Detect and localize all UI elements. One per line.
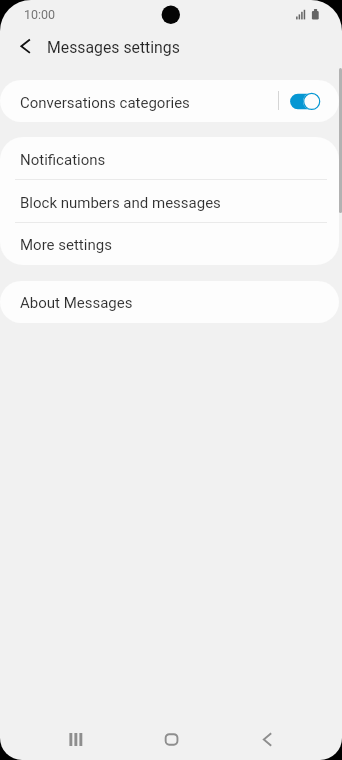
staticText: Messages settings <box>47 38 180 57</box>
button[interactable]: Conversations categories <box>0 80 339 122</box>
staticText: More settings <box>20 236 112 254</box>
button[interactable]: Notifications <box>0 137 339 180</box>
button[interactable]: Recent apps <box>52 710 100 758</box>
button[interactable]: Back <box>243 710 291 758</box>
staticText: About Messages <box>20 294 133 312</box>
button[interactable]: Home <box>147 710 195 758</box>
staticText: 10:00 <box>24 7 56 22</box>
staticText: Block numbers and messages <box>20 194 221 212</box>
button[interactable]: Navigate up <box>6 29 44 68</box>
button[interactable]: Block numbers and messages <box>0 180 339 223</box>
button[interactable]: More settings <box>0 223 339 265</box>
button[interactable]: Conversations categories <box>286 80 330 122</box>
staticText: Conversations categories <box>20 94 190 112</box>
button[interactable]: About Messages <box>0 281 339 323</box>
staticText: Notifications <box>20 151 106 169</box>
